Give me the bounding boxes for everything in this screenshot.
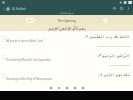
staticText: Al-Fatihah — [12, 7, 27, 11]
staticText: 1 — [105, 19, 107, 22]
button[interactable]: Previous — [47, 84, 55, 91]
button[interactable]: Reciter — [6, 7, 10, 11]
staticText: Alhamdu lillahi rabbil 'alamin — [0, 44, 130, 47]
button[interactable]: مَٰلِكِ يَوْمِ ٱلدِّينِ ۝٤ — [0, 71, 133, 84]
button[interactable]: Settings — [79, 84, 87, 91]
staticText: The Opening — [57, 19, 76, 23]
button[interactable]: Search — [111, 5, 118, 12]
button[interactable]: Surah number — [103, 18, 108, 23]
staticText: سورة الفاتحة — [59, 11, 74, 15]
staticText: ٱلرَّحْمَٰنِ ٱلرَّحِيمِ ۝٣ — [0, 53, 130, 58]
button[interactable]: Bookmark — [71, 84, 79, 91]
staticText: Juz 1 — [28, 19, 33, 22]
staticText: Ar-Rahmanir-Rahim — [0, 63, 130, 66]
button[interactable]: Repeat — [63, 84, 71, 91]
staticText: All praise is due to Allah, Lord — [6, 39, 44, 43]
staticText: مَٰلِكِ يَوْمِ ٱلدِّينِ ۝٤ — [0, 72, 130, 77]
button[interactable]: Juz — [26, 18, 35, 23]
staticText: ٱلْحَمْدُ لِلَّهِ رَبِّ ٱلْعَٰلَمِينَ ۝٢ — [0, 34, 130, 39]
button[interactable]: ٱلرَّحْمَٰنِ ٱلرَّحِيمِ ۝٣ — [0, 52, 133, 71]
button[interactable]: Back — [1, 6, 6, 11]
staticText: The Entirely Merciful, the Especially — [6, 58, 51, 62]
button[interactable]: Play — [55, 84, 63, 91]
button[interactable]: More options — [125, 5, 132, 12]
button[interactable]: Bookmark — [118, 5, 125, 12]
staticText: بِسْمِ اللَّهِ الرَّحْمَٰنِ الرَّحِيمِ — [48, 26, 86, 31]
staticText: Sovereign of the Day of Recompense — [6, 77, 53, 81]
button[interactable]: ٱلْحَمْدُ لِلَّهِ رَبِّ ٱلْعَٰلَمِينَ ۝٢ — [0, 33, 133, 52]
